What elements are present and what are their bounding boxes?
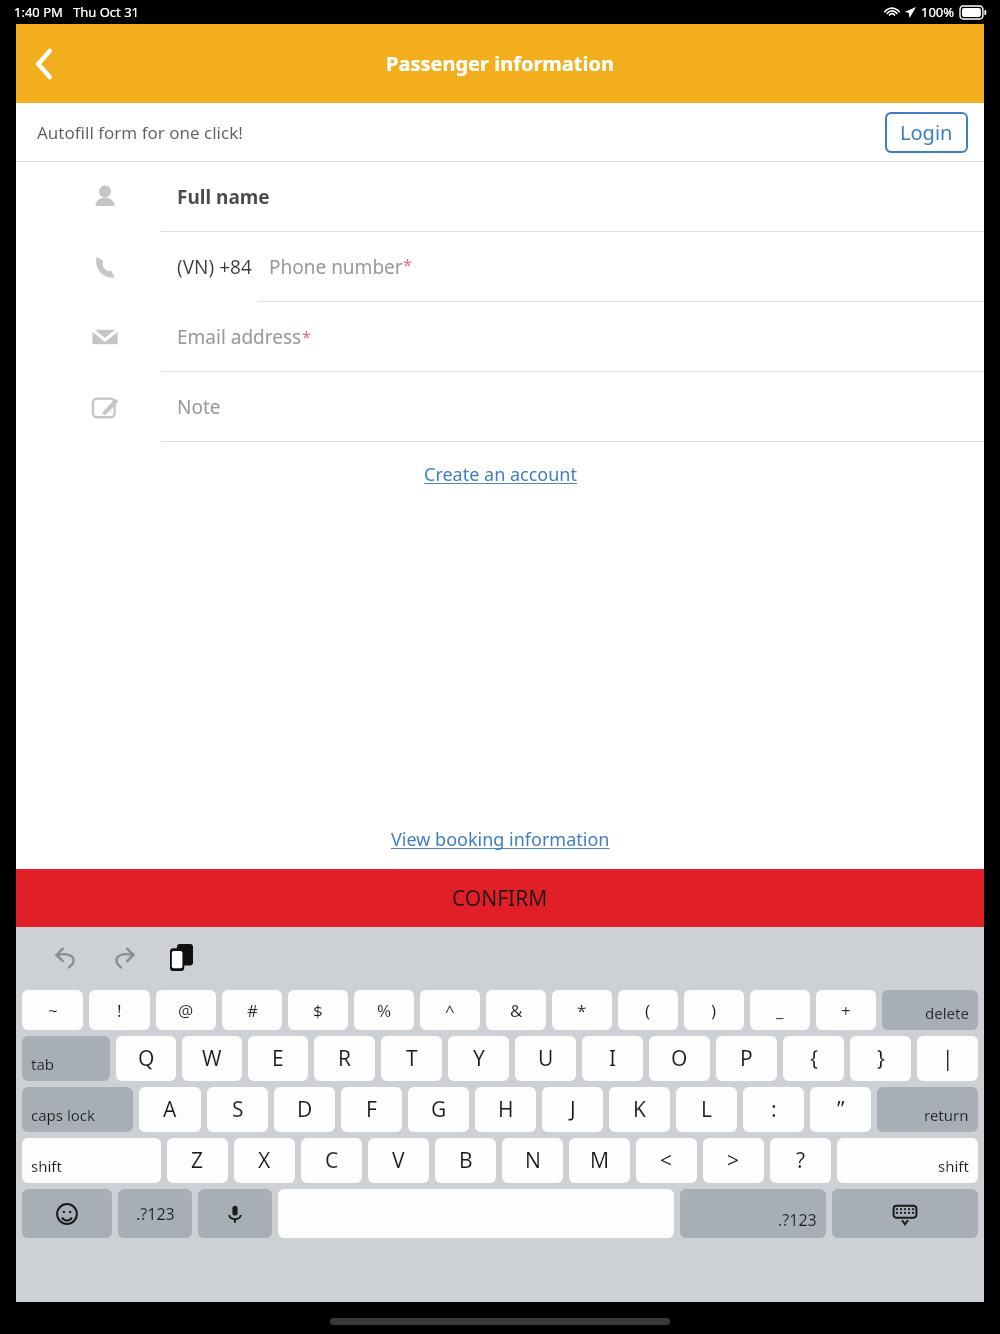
button[interactable]: V — [368, 1138, 429, 1183]
button[interactable]: Email address — [16, 302, 984, 372]
staticText: A — [163, 1095, 177, 1124]
button[interactable]: H — [475, 1087, 536, 1132]
button[interactable]: D — [274, 1087, 335, 1132]
button[interactable]: Hide keyboard — [832, 1189, 978, 1238]
staticText: < — [660, 1146, 673, 1175]
staticText: N — [525, 1146, 541, 1175]
button[interactable]: X — [234, 1138, 295, 1183]
button[interactable]: Undo — [46, 936, 88, 978]
button[interactable]: @ — [156, 990, 216, 1030]
staticText: 1:40 PM — [14, 3, 63, 21]
staticText: & — [510, 999, 523, 1022]
button[interactable]: A — [139, 1087, 201, 1132]
staticText: Login — [900, 119, 953, 146]
button[interactable]: U — [515, 1036, 576, 1081]
button[interactable]: .?123 — [680, 1189, 826, 1238]
staticText: return — [924, 1105, 969, 1125]
button[interactable]: return — [877, 1087, 978, 1132]
staticText: { — [810, 1044, 818, 1073]
button[interactable]: ^ — [420, 990, 480, 1030]
button[interactable]: Redo — [102, 936, 144, 978]
button[interactable]: | — [917, 1036, 978, 1081]
button[interactable]: S — [207, 1087, 268, 1132]
button[interactable]: { — [783, 1036, 844, 1081]
staticText: $ — [313, 999, 323, 1022]
staticText: D — [297, 1095, 313, 1124]
button[interactable]: Back — [16, 36, 72, 92]
staticText: shift — [31, 1156, 62, 1176]
staticText: View booking information — [391, 827, 610, 852]
button[interactable]: % — [354, 990, 414, 1030]
staticText: F — [366, 1095, 377, 1124]
button[interactable]: View booking information — [385, 821, 616, 858]
button[interactable]: N — [502, 1138, 563, 1183]
button[interactable]: Emoji — [22, 1189, 112, 1238]
staticText: > — [727, 1146, 740, 1175]
button[interactable]: Login — [885, 112, 968, 153]
button[interactable]: I — [582, 1036, 643, 1081]
staticText: : — [771, 1095, 777, 1124]
button[interactable]: $ — [288, 990, 348, 1030]
button[interactable]: CONFIRM — [16, 869, 984, 927]
staticText: W — [202, 1044, 222, 1073]
button[interactable]: > — [703, 1138, 764, 1183]
button[interactable]: : — [743, 1087, 804, 1132]
button[interactable]: } — [850, 1036, 911, 1081]
staticText: # — [247, 999, 258, 1022]
button[interactable]: caps lock — [22, 1087, 133, 1132]
button[interactable]: shift — [22, 1138, 161, 1183]
button[interactable]: T — [381, 1036, 442, 1081]
button[interactable]: Full name — [16, 162, 984, 232]
button[interactable]: ( — [618, 990, 678, 1030]
button[interactable]: shift — [837, 1138, 978, 1183]
staticText: B — [459, 1146, 473, 1175]
button[interactable]: C — [301, 1138, 362, 1183]
button[interactable]: ) — [684, 990, 744, 1030]
button[interactable]: + — [816, 990, 876, 1030]
button[interactable]: ! — [89, 990, 150, 1030]
button[interactable]: Y — [448, 1036, 509, 1081]
button[interactable]: ” — [810, 1087, 871, 1132]
staticText: _ — [776, 999, 784, 1022]
button[interactable]: M — [569, 1138, 630, 1183]
button[interactable]: < — [636, 1138, 697, 1183]
staticText: V — [392, 1146, 405, 1175]
staticText: } — [877, 1044, 885, 1073]
button[interactable]: P — [716, 1036, 777, 1081]
button[interactable]: Q — [116, 1036, 176, 1081]
button[interactable]: B — [435, 1138, 496, 1183]
button[interactable]: Dictation — [198, 1189, 272, 1238]
button[interactable]: delete — [882, 990, 978, 1030]
button[interactable]: G — [408, 1087, 469, 1132]
button[interactable]: ? — [770, 1138, 831, 1183]
button[interactable]: Note — [16, 372, 984, 442]
button[interactable]: (VN) +84 — [16, 232, 984, 302]
button[interactable]: O — [649, 1036, 710, 1081]
button[interactable]: Paste — [160, 936, 202, 978]
button[interactable]: J — [542, 1087, 603, 1132]
button[interactable]: R — [314, 1036, 375, 1081]
button[interactable]: E — [248, 1036, 308, 1081]
staticText: 100% — [921, 3, 955, 21]
staticText: ^ — [445, 999, 455, 1022]
button[interactable]: W — [182, 1036, 242, 1081]
button[interactable]: * — [552, 990, 612, 1030]
button[interactable]: tab — [22, 1036, 110, 1081]
button[interactable]: .?123 — [118, 1189, 192, 1238]
staticText: ~ — [48, 999, 58, 1022]
button[interactable]: L — [676, 1087, 737, 1132]
staticText: @ — [178, 999, 194, 1022]
button[interactable]: Create an account — [418, 456, 583, 493]
button[interactable]: _ — [750, 990, 810, 1030]
button[interactable]: Z — [167, 1138, 228, 1183]
button[interactable]: # — [222, 990, 282, 1030]
button[interactable]: ~ — [22, 990, 83, 1030]
button[interactable]: & — [486, 990, 546, 1030]
button[interactable]: F — [341, 1087, 402, 1132]
staticText: CONFIRM — [452, 884, 548, 913]
staticText: % — [377, 999, 392, 1022]
button[interactable]: K — [609, 1087, 670, 1132]
staticText: K — [633, 1095, 646, 1124]
staticText: delete — [925, 1003, 969, 1023]
